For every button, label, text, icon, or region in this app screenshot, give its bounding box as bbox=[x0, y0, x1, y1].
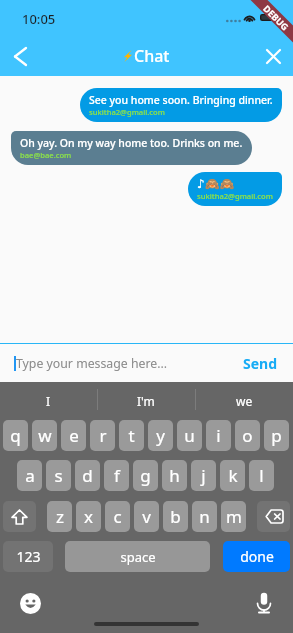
staticText: Oh yay. On my way home too. Drinks on me… bbox=[20, 136, 243, 150]
button[interactable]: v bbox=[134, 501, 159, 532]
staticText: w bbox=[38, 424, 52, 447]
button[interactable]: c bbox=[105, 501, 130, 532]
button[interactable]: Shift bbox=[3, 501, 36, 532]
button[interactable]: 123 bbox=[3, 541, 53, 572]
staticText: sukitha2@gmail.com bbox=[89, 107, 165, 117]
staticText: l bbox=[259, 464, 264, 487]
button[interactable]: See you home soon. Bringing dinner. bbox=[80, 88, 282, 122]
button[interactable]: e bbox=[61, 420, 86, 451]
button[interactable]: y bbox=[148, 420, 173, 451]
staticText: k bbox=[228, 464, 238, 487]
button[interactable]: m bbox=[221, 501, 246, 532]
button[interactable]: Oh yay. On my way home too. Drinks on me… bbox=[11, 131, 252, 165]
staticText: o bbox=[242, 424, 253, 447]
staticText: Chat bbox=[134, 45, 170, 67]
staticText: s bbox=[54, 464, 63, 487]
button[interactable]: t bbox=[119, 420, 144, 451]
button[interactable]: done bbox=[223, 541, 290, 572]
button[interactable]: x bbox=[76, 501, 101, 532]
staticText: a bbox=[25, 464, 35, 487]
staticText: r bbox=[99, 424, 107, 447]
staticText: e bbox=[69, 424, 79, 447]
button[interactable]: ♪🙈🙈 bbox=[188, 172, 282, 206]
button[interactable]: u bbox=[177, 420, 202, 451]
staticText: DEBUG bbox=[261, 2, 292, 33]
staticText: j bbox=[201, 464, 206, 487]
staticText: g bbox=[140, 464, 151, 487]
button[interactable]: b bbox=[163, 501, 188, 532]
button[interactable]: Backspace bbox=[257, 501, 290, 532]
staticText: z bbox=[56, 505, 64, 528]
staticText: sukitha2@gmail.com bbox=[197, 191, 273, 201]
staticText: m bbox=[226, 505, 242, 528]
button[interactable]: h bbox=[162, 460, 187, 491]
staticText: i bbox=[216, 424, 221, 447]
staticText: space bbox=[120, 548, 156, 566]
button[interactable]: Microphone bbox=[255, 592, 273, 614]
staticText: x bbox=[84, 505, 93, 528]
staticText: Send bbox=[243, 354, 278, 373]
staticText: n bbox=[199, 505, 210, 528]
button[interactable]: Close bbox=[253, 36, 293, 76]
staticText: we bbox=[236, 393, 253, 409]
staticText: y bbox=[156, 424, 165, 447]
button[interactable]: o bbox=[235, 420, 260, 451]
staticText: b bbox=[170, 505, 181, 528]
staticText: bae@bae.com bbox=[20, 150, 72, 160]
button[interactable]: space bbox=[65, 541, 210, 572]
staticText: See you home soon. Bringing dinner. bbox=[89, 93, 273, 107]
button[interactable]: p bbox=[264, 420, 289, 451]
button[interactable]: we bbox=[195, 382, 293, 420]
button[interactable]: r bbox=[90, 420, 115, 451]
staticText: I'm bbox=[137, 393, 155, 409]
staticText: h bbox=[169, 464, 180, 487]
button[interactable]: k bbox=[220, 460, 245, 491]
staticText: v bbox=[142, 505, 151, 528]
button[interactable]: d bbox=[75, 460, 100, 491]
button[interactable]: f bbox=[104, 460, 129, 491]
button[interactable]: I bbox=[0, 382, 97, 420]
staticText: done bbox=[240, 547, 274, 566]
button[interactable]: w bbox=[32, 420, 57, 451]
staticText: u bbox=[184, 424, 195, 447]
staticText: c bbox=[113, 505, 122, 528]
staticText: p bbox=[271, 424, 282, 447]
button[interactable]: n bbox=[192, 501, 217, 532]
button[interactable]: Back bbox=[0, 36, 40, 76]
button[interactable]: l bbox=[249, 460, 274, 491]
button[interactable]: z bbox=[47, 501, 72, 532]
staticText: I bbox=[46, 393, 51, 409]
button[interactable]: Emoji bbox=[20, 593, 41, 614]
button[interactable]: i bbox=[206, 420, 231, 451]
staticText: f bbox=[114, 464, 120, 487]
button[interactable]: q bbox=[3, 420, 28, 451]
staticText: 123 bbox=[16, 547, 41, 566]
button[interactable]: I'm bbox=[97, 382, 195, 420]
staticText: t bbox=[128, 424, 135, 447]
staticText: q bbox=[10, 424, 21, 447]
button[interactable]: s bbox=[46, 460, 71, 491]
button[interactable]: g bbox=[133, 460, 158, 491]
button[interactable]: a bbox=[17, 460, 42, 491]
staticText: d bbox=[82, 464, 93, 487]
button[interactable]: Send bbox=[243, 348, 293, 379]
staticText: ♪🙈🙈 bbox=[197, 177, 235, 191]
staticText: Type your message here... bbox=[16, 355, 168, 372]
staticText: 10:05 bbox=[22, 10, 56, 28]
button[interactable]: j bbox=[191, 460, 216, 491]
